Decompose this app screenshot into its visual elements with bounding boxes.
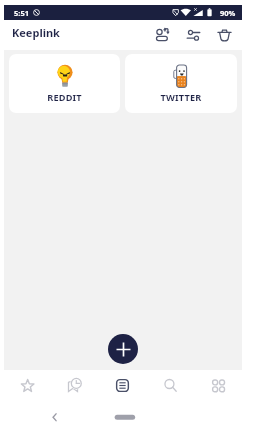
- staticText: 5:51: [14, 8, 29, 18]
- staticText: Keeplink: [12, 25, 60, 40]
- button[interactable]: REDDIT: [9, 54, 120, 113]
- staticText: TWITTER: [160, 91, 202, 104]
- button[interactable]: Notes: [98, 370, 146, 400]
- button[interactable]: Search: [146, 370, 194, 400]
- button[interactable]: Delete: [211, 22, 237, 48]
- staticText: 90%: [220, 8, 236, 18]
- button[interactable]: Add link: [108, 334, 138, 364]
- button[interactable]: Apps: [194, 370, 242, 400]
- staticText: REDDIT: [47, 91, 82, 104]
- button[interactable]: Switch account: [149, 22, 175, 48]
- button[interactable]: Recent: [51, 370, 98, 400]
- button[interactable]: Favorites: [4, 370, 51, 400]
- button[interactable]: TWITTER: [125, 54, 237, 113]
- button[interactable]: Settings: [180, 22, 206, 48]
